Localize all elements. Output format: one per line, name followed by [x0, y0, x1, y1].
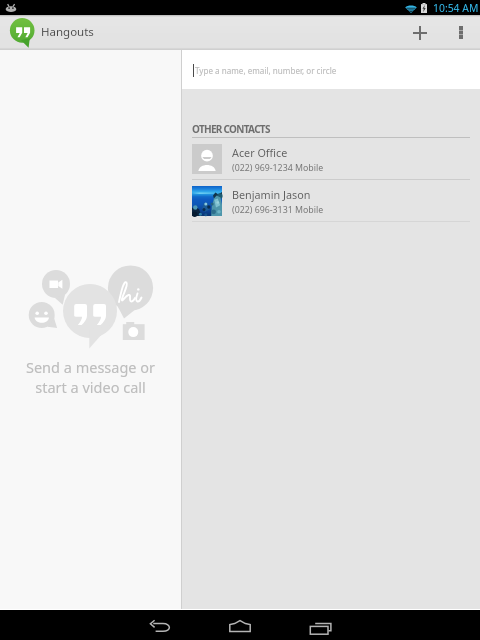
button[interactable]: More options: [448, 15, 474, 50]
staticText: (022) 696-3131 Mobile: [232, 204, 324, 216]
staticText: Benjamin Jason: [232, 187, 311, 202]
button[interactable]: New conversation: [403, 15, 437, 50]
staticText: Send a message or start a video call: [0, 357, 181, 397]
button[interactable]: Recent apps: [300, 610, 342, 640]
button[interactable]: Benjamin Jason: [182, 180, 480, 221]
staticText: OTHER CONTACTS: [192, 122, 270, 136]
staticText: Acer Office: [232, 145, 288, 160]
button[interactable]: Home: [219, 610, 261, 640]
staticText: 10:54 AM: [433, 1, 479, 15]
staticText: (022) 969-1234 Mobile: [232, 162, 324, 174]
button[interactable]: Back: [140, 610, 182, 640]
staticText: Type a name, email, number, or circle: [195, 65, 337, 76]
button[interactable]: Acer Office: [182, 138, 480, 179]
staticText: Hangouts: [41, 24, 94, 40]
